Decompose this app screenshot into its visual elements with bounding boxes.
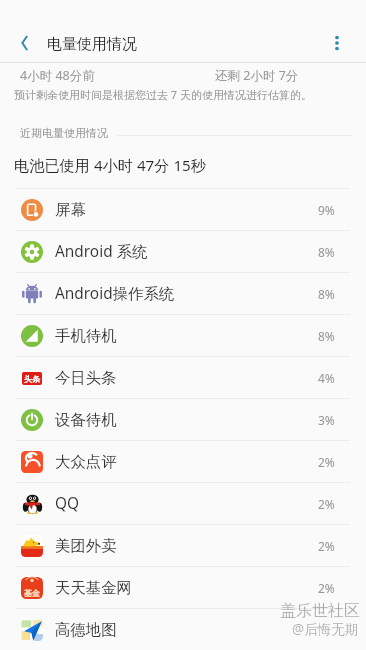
staticText: 预计剩余使用时间是根据您过去 7 天的使用情况进行估算的。 [14,87,313,102]
button[interactable]: 高德地图 [0,609,366,650]
staticText: Android操作系统 [55,283,175,304]
staticText: 高德地图 [55,620,117,639]
staticText: 2% [318,496,335,512]
staticText: 还剩 2小时 7分 [215,67,299,84]
staticText: 8% [318,244,335,260]
button[interactable]: 头条 [0,357,366,398]
staticText: 手机待机 [55,326,117,345]
staticText: 4小时 48分前 [20,67,95,84]
button[interactable]: 设备待机 [0,399,366,440]
staticText: 8% [318,286,335,302]
staticText: 8% [318,328,335,344]
staticText: 盖乐世社区 [280,601,360,621]
button[interactable]: 屏幕 [0,189,366,230]
staticText: 3% [318,412,335,428]
staticText: 美团外卖 [55,536,117,555]
button[interactable]: Android 系统 [0,231,366,272]
staticText: 设备待机 [55,410,117,429]
staticText: @后悔无期 [292,620,359,638]
staticText: 2% [318,580,335,596]
button[interactable]: 大众点评 [0,441,366,482]
button[interactable]: More options [321,27,353,59]
staticText: Android 系统 [55,241,148,262]
staticText: QQ [55,493,80,514]
button[interactable]: Android操作系统 [0,273,366,314]
button[interactable]: QQ [0,483,366,524]
staticText: 电量使用情况 [47,35,137,54]
staticText: 天天基金网 [55,578,132,597]
staticText: 2% [318,454,335,470]
button[interactable]: 美团外卖 [0,525,366,566]
staticText: 电池已使用 4小时 47分 15秒 [14,155,206,176]
staticText: 今日头条 [55,368,117,387]
staticText: 大众点评 [55,452,117,471]
staticText: 屏幕 [55,200,86,219]
staticText: 4% [318,370,335,386]
staticText: 头条 [24,374,40,384]
button[interactable]: 手机待机 [0,315,366,356]
button[interactable]: 基金 [0,567,366,608]
staticText: 基金 [24,588,40,598]
staticText: 9% [318,202,335,218]
button[interactable]: Back [8,27,40,59]
staticText: 近期电量使用情况 [20,126,108,140]
staticText: 2% [318,538,335,554]
